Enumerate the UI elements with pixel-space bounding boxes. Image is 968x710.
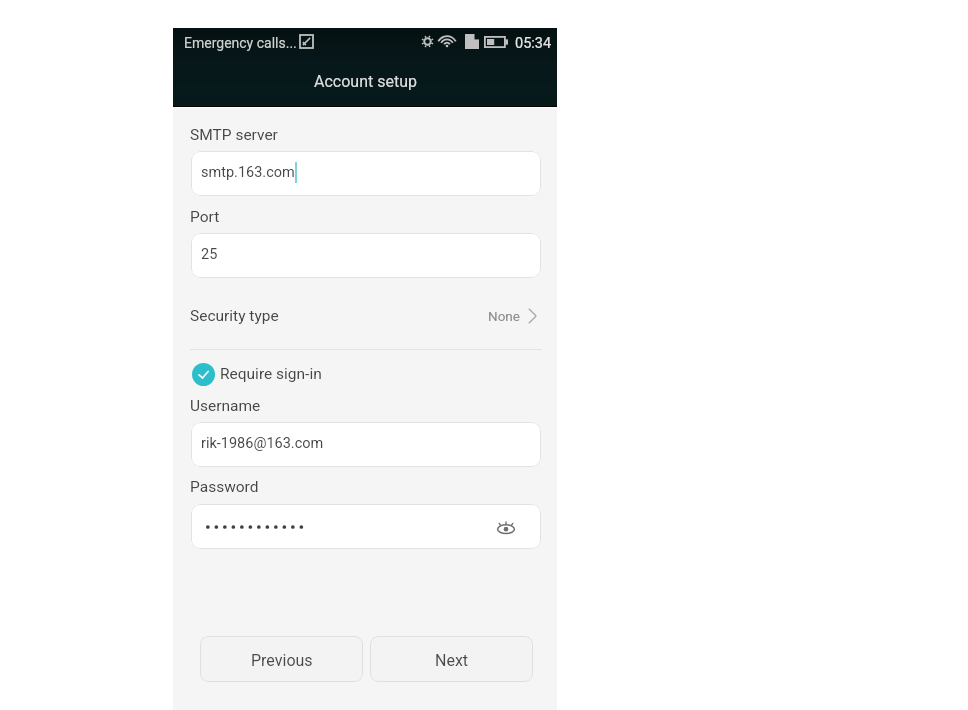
staticText: Previous [251,651,313,670]
staticText: Require sign-in [220,365,322,383]
button[interactable]: Show password [191,504,541,549]
staticText: Username [190,397,261,415]
staticText: rik-1986@163.com [201,435,324,452]
staticText: Port [190,208,220,226]
staticText: smtp.163.com [201,164,295,181]
button[interactable]: rik-1986@163.com [191,422,541,467]
staticText: 25 [201,246,218,263]
staticText: 05:34 [515,35,552,52]
button[interactable]: Previous [200,636,363,682]
staticText: SMTP server [190,126,278,144]
button[interactable]: Next [370,636,533,682]
staticText: Password [190,478,259,496]
button[interactable]: Security type [190,294,537,338]
staticText: Next [435,651,469,670]
staticText: None [488,308,520,324]
button[interactable]: smtp.163.com [191,151,541,196]
staticText: Account setup [314,72,417,91]
staticText: Security type [190,307,279,325]
button[interactable]: Require sign-in [192,361,542,387]
button[interactable]: Show password [493,514,519,540]
button[interactable]: 25 [191,233,541,278]
staticText: Emergency calls... [184,35,297,51]
